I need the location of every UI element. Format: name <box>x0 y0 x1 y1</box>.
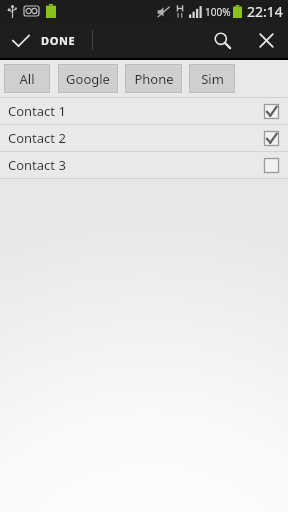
staticText: Contact 3 <box>8 156 66 174</box>
staticText: 22:14 <box>247 2 283 21</box>
button[interactable]: Contact 3 <box>0 152 288 178</box>
button[interactable]: Contact 2 <box>0 125 288 151</box>
button[interactable]: All <box>4 64 50 93</box>
staticText: Google <box>66 70 110 88</box>
staticText: Phone <box>134 70 174 88</box>
button[interactable]: Google <box>58 64 118 93</box>
button[interactable]: Close <box>244 22 288 58</box>
button[interactable]: Phone <box>125 64 182 93</box>
button[interactable]: Sim <box>189 64 235 93</box>
staticText: All <box>19 70 35 88</box>
staticText: 100% <box>205 5 231 19</box>
staticText: Contact 2 <box>8 129 66 147</box>
button[interactable]: DONE <box>0 27 88 54</box>
button[interactable]: Search <box>200 22 244 58</box>
staticText: Sim <box>201 70 224 88</box>
staticText: DONE <box>41 33 76 48</box>
staticText: Contact 1 <box>8 102 66 120</box>
button[interactable]: Contact 1 <box>0 98 288 124</box>
